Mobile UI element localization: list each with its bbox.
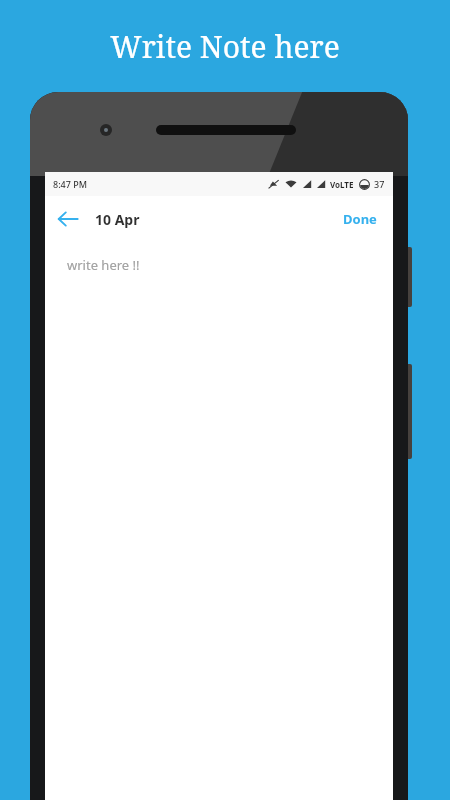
staticText: write here !! xyxy=(67,256,140,274)
staticText: VoLTE xyxy=(330,179,354,190)
staticText: 10 Apr xyxy=(95,210,140,229)
staticText: Done xyxy=(343,210,377,228)
staticText: 8:47 PM xyxy=(53,178,87,190)
button[interactable]: Done xyxy=(327,200,393,238)
staticText: Write Note here xyxy=(110,26,340,67)
staticText: 37 xyxy=(374,178,385,190)
button[interactable]: Back xyxy=(45,196,91,242)
